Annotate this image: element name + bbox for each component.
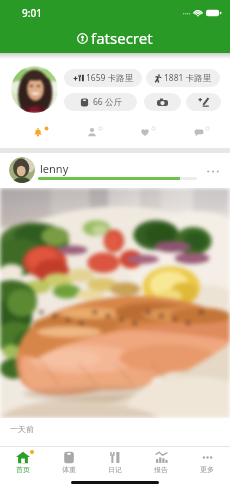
button[interactable]: Notifications <box>18 121 64 143</box>
staticText: 体重 <box>62 465 76 474</box>
button[interactable]: More options <box>203 161 223 181</box>
staticText: 日记 <box>108 465 122 474</box>
staticText: lenny <box>40 161 69 176</box>
button[interactable]: 更多 <box>184 447 230 478</box>
button[interactable]: Profile photo <box>11 66 58 113</box>
button[interactable]: 日记 <box>92 447 138 478</box>
button[interactable]: Camera <box>144 93 181 111</box>
staticText: 报告 <box>154 465 168 474</box>
button[interactable]: fatsecret <box>77 28 153 48</box>
button[interactable]: Comments <box>179 121 225 143</box>
button[interactable]: 体重 <box>46 447 92 478</box>
staticText: 1881 卡路里 <box>164 72 212 84</box>
staticText: 9:01 <box>22 6 42 20</box>
button[interactable]: 首页 <box>0 447 46 478</box>
button[interactable]: 1881 卡路里 <box>146 69 220 87</box>
button[interactable]: Friends <box>72 121 118 143</box>
staticText: 1659 卡路里 <box>86 72 134 84</box>
staticText: 更多 <box>200 465 214 474</box>
button[interactable]: 66 公斤 <box>64 93 137 111</box>
staticText: fatsecret <box>91 28 153 48</box>
button[interactable]: lenny profile <box>9 157 35 183</box>
staticText: 一天前 <box>10 424 34 434</box>
staticText: 首页 <box>16 465 30 474</box>
staticText: 66 公斤 <box>93 96 122 108</box>
button[interactable]: Edit <box>186 93 221 111</box>
button[interactable]: Likes <box>125 121 171 143</box>
button[interactable]: 报告 <box>138 447 184 478</box>
button[interactable]: 1659 卡路里 <box>64 69 142 87</box>
